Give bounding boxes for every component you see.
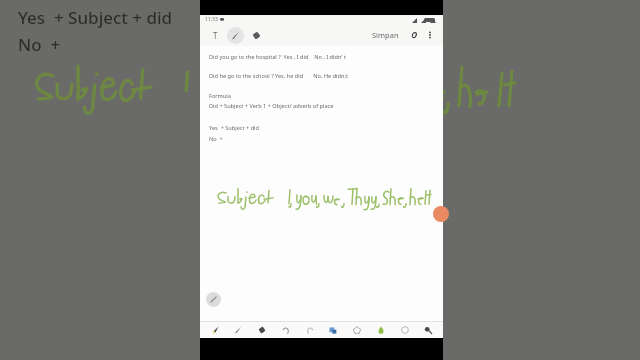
button[interactable]: Lasso — [419, 322, 437, 338]
button[interactable]: Eraser — [248, 27, 264, 43]
button[interactable]: More options — [424, 29, 436, 41]
staticText: Yes + Subject + did — [209, 124, 259, 132]
button[interactable]: Shapes — [348, 322, 366, 338]
button[interactable]: Undo — [277, 322, 295, 338]
staticText: No + — [18, 33, 61, 56]
staticText: 11:33 — [205, 16, 218, 23]
staticText: Did + Subject + Verb 1 + Object/ adverb … — [209, 102, 334, 110]
button[interactable]: Redo — [301, 322, 319, 338]
button[interactable]: Text tool — [207, 27, 223, 43]
staticText: No + — [209, 135, 223, 143]
staticText: Simpan — [372, 30, 399, 40]
button[interactable]: Pen — [229, 322, 247, 338]
staticText: T — [213, 30, 218, 41]
button[interactable]: Insert image — [324, 322, 342, 338]
button[interactable]: Color — [372, 322, 390, 338]
button[interactable]: Eraser — [253, 322, 271, 338]
button[interactable]: Simpan — [369, 28, 402, 42]
staticText: Formula — [209, 92, 231, 100]
staticText: Did he go to the school ? Yes, he did No… — [209, 72, 348, 80]
button[interactable]: Highlighter — [206, 322, 224, 338]
staticText: Did you go to the hospital ? Yes , I did… — [209, 53, 347, 61]
staticText: Yes + Subject + did — [18, 6, 173, 29]
button[interactable]: Brush size — [396, 322, 414, 338]
button[interactable]: Edit — [206, 292, 221, 307]
button[interactable]: Pen tool — [227, 27, 244, 44]
button[interactable]: Attach — [407, 28, 421, 42]
